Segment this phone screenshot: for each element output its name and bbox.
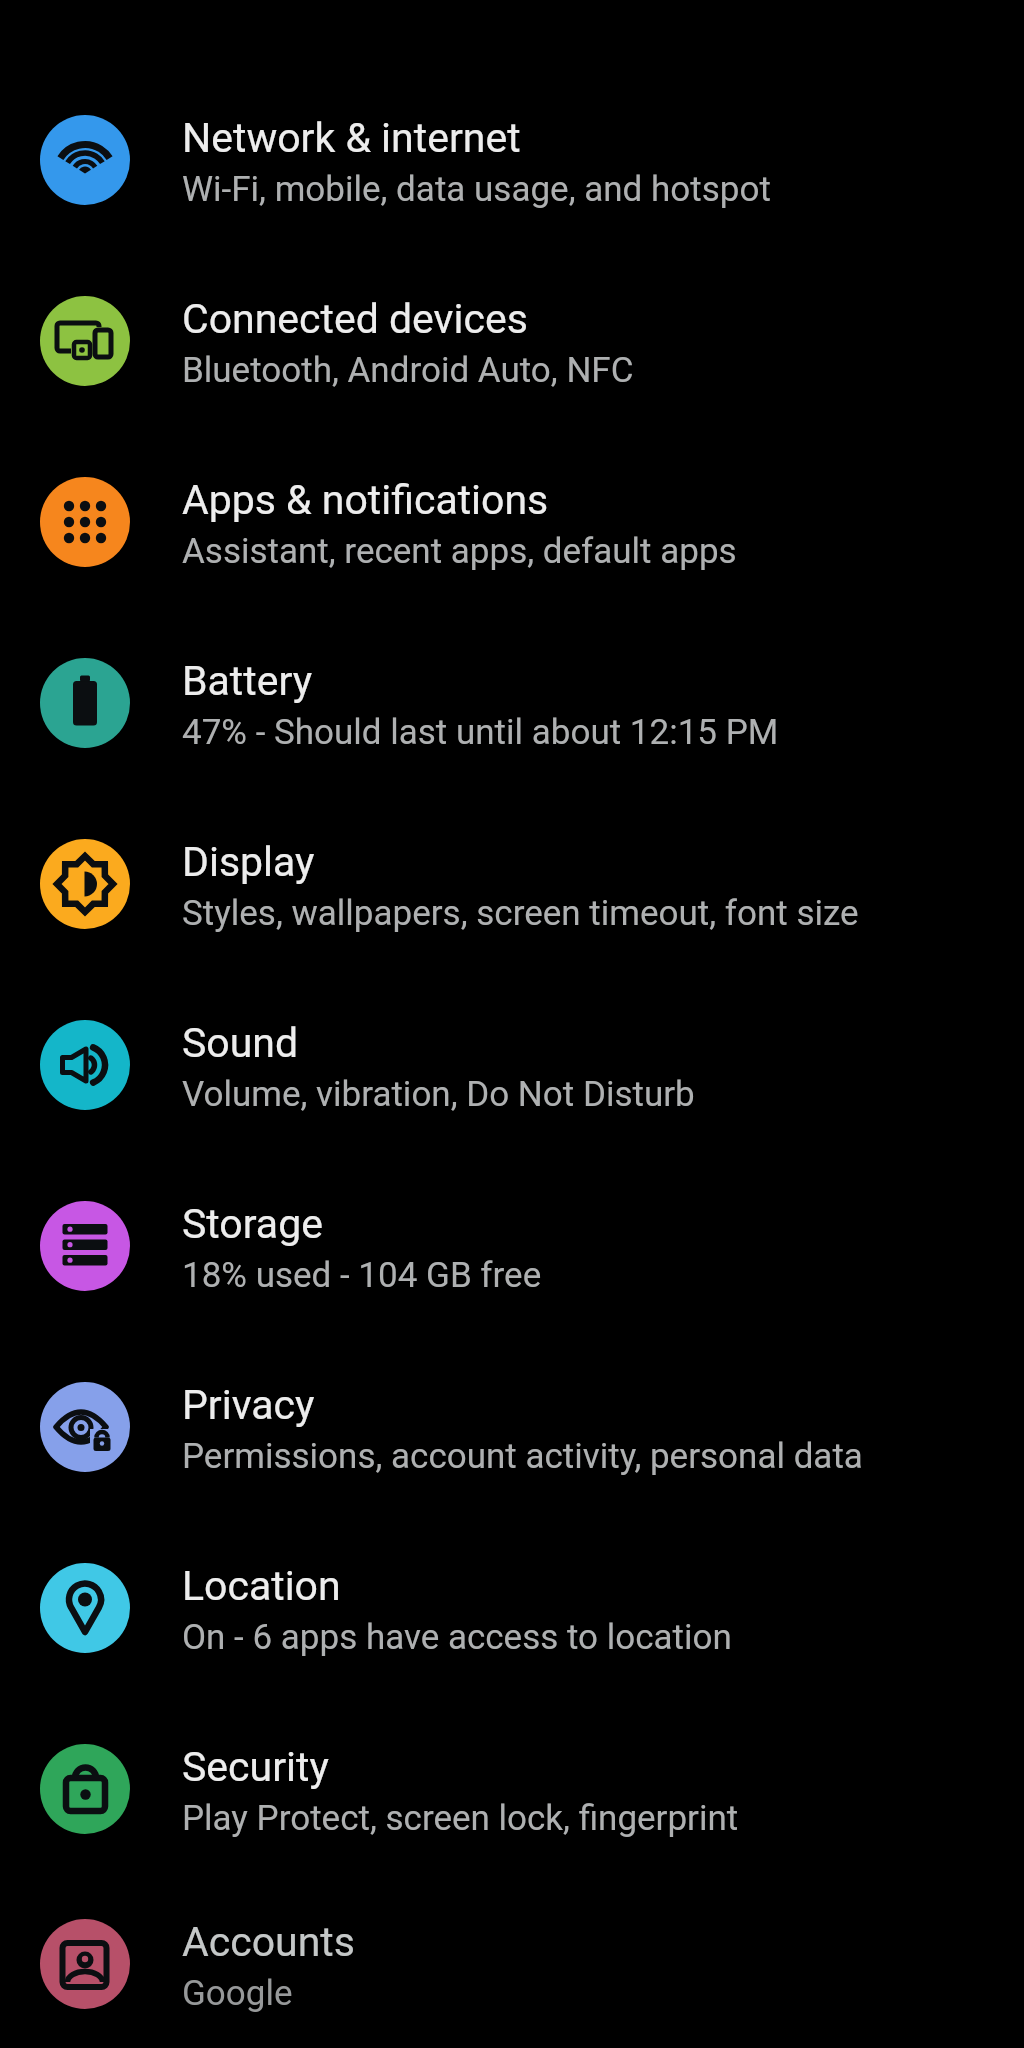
staticText: Connected devices — [182, 295, 528, 343]
staticText: Location — [182, 1562, 341, 1610]
staticText: Display — [182, 838, 315, 886]
button[interactable]: Battery — [0, 612, 1024, 793]
staticText: Storage — [182, 1200, 323, 1248]
button[interactable]: Accounts — [0, 1879, 1024, 2048]
staticText: Accounts — [182, 1918, 355, 1966]
button[interactable]: Security — [0, 1698, 1024, 1879]
staticText: 18% used - 104 GB free — [182, 1255, 542, 1296]
staticText: Battery — [182, 657, 313, 705]
staticText: Security — [182, 1743, 329, 1791]
staticText: Permissions, account activity, personal … — [182, 1436, 863, 1477]
staticText: Network & internet — [182, 114, 521, 162]
button[interactable]: Location — [0, 1517, 1024, 1698]
staticText: Wi-Fi, mobile, data usage, and hotspot — [182, 169, 771, 210]
staticText: Styles, wallpapers, screen timeout, font… — [182, 893, 859, 934]
staticText: Apps & notifications — [182, 476, 549, 524]
button[interactable]: Network & internet — [0, 69, 1024, 250]
button[interactable]: Display — [0, 793, 1024, 974]
button[interactable]: Privacy — [0, 1336, 1024, 1517]
staticText: 47% - Should last until about 12:15 PM — [182, 712, 779, 753]
staticText: Privacy — [182, 1381, 315, 1429]
staticText: Sound — [182, 1019, 299, 1067]
staticText: Google — [182, 1973, 293, 2014]
staticText: Play Protect, screen lock, fingerprint — [182, 1798, 739, 1839]
staticText: Bluetooth, Android Auto, NFC — [182, 350, 634, 391]
button[interactable]: Apps & notifications — [0, 431, 1024, 612]
staticText: Assistant, recent apps, default apps — [182, 531, 737, 572]
button[interactable]: Sound — [0, 974, 1024, 1155]
staticText: On - 6 apps have access to location — [182, 1617, 732, 1658]
button[interactable]: Storage — [0, 1155, 1024, 1336]
staticText: Volume, vibration, Do Not Disturb — [182, 1074, 695, 1115]
button[interactable]: Connected devices — [0, 250, 1024, 431]
